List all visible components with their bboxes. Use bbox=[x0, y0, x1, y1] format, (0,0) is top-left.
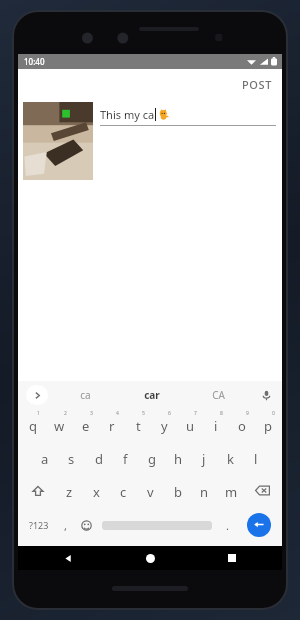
button[interactable]: This my ca bbox=[100, 107, 276, 126]
button[interactable]: z bbox=[56, 474, 83, 507]
staticText: q bbox=[29, 417, 37, 435]
staticText: t bbox=[136, 417, 141, 435]
staticText: 0 bbox=[272, 410, 275, 417]
button[interactable]: ?123 bbox=[22, 507, 55, 543]
button[interactable]: h bbox=[165, 441, 191, 474]
button[interactable]: Emoji bbox=[75, 507, 98, 543]
button[interactable]: v bbox=[137, 474, 164, 507]
button[interactable]: More suggestions bbox=[26, 385, 48, 405]
button[interactable]: s bbox=[58, 441, 85, 474]
staticText: j bbox=[202, 450, 206, 468]
staticText: f bbox=[123, 450, 128, 468]
button[interactable]: POST bbox=[232, 72, 282, 97]
staticText: 5 bbox=[142, 410, 145, 417]
button[interactable]: . bbox=[216, 507, 239, 543]
button[interactable]: l bbox=[243, 441, 269, 474]
staticText: r bbox=[109, 417, 115, 435]
staticText: This my ca bbox=[100, 107, 155, 122]
staticText: u bbox=[186, 417, 195, 435]
staticText: ?123 bbox=[29, 519, 49, 531]
button[interactable]: d bbox=[85, 441, 112, 474]
button[interactable]: n bbox=[191, 474, 218, 507]
staticText: 8 bbox=[220, 410, 223, 417]
button[interactable]: car bbox=[118, 381, 185, 408]
button[interactable]: b bbox=[164, 474, 191, 507]
button[interactable]: c bbox=[110, 474, 137, 507]
button[interactable]: Home bbox=[138, 546, 162, 570]
staticText: 10:40 bbox=[24, 56, 45, 67]
staticText: l bbox=[254, 450, 258, 468]
staticText: w bbox=[54, 417, 65, 435]
staticText: a bbox=[41, 450, 49, 468]
staticText: h bbox=[174, 450, 183, 468]
staticText: m bbox=[225, 483, 238, 501]
staticText: s bbox=[68, 450, 75, 468]
staticText: CA bbox=[212, 388, 225, 402]
button[interactable]: 9 bbox=[229, 408, 255, 441]
button[interactable]: 4 bbox=[99, 408, 125, 441]
button[interactable]: 1 bbox=[19, 408, 46, 441]
button[interactable]: Back bbox=[56, 546, 80, 570]
staticText: i bbox=[214, 417, 218, 435]
staticText: n bbox=[200, 483, 209, 501]
button[interactable]: 3 bbox=[73, 408, 99, 441]
staticText: d bbox=[95, 450, 103, 468]
button[interactable]: Enter bbox=[239, 507, 278, 543]
staticText: 7 bbox=[194, 410, 197, 417]
staticText: o bbox=[238, 417, 246, 435]
staticText: g bbox=[148, 450, 156, 468]
staticText: 6 bbox=[168, 410, 171, 417]
staticText: 9 bbox=[246, 410, 249, 417]
button[interactable]: ca bbox=[52, 381, 118, 408]
button[interactable]: j bbox=[191, 441, 217, 474]
staticText: car bbox=[144, 388, 160, 402]
staticText: b bbox=[174, 483, 182, 501]
staticText: x bbox=[93, 483, 100, 501]
staticText: . bbox=[226, 518, 229, 533]
button[interactable]: 2 bbox=[46, 408, 73, 441]
staticText: p bbox=[264, 417, 272, 435]
staticText: 2 bbox=[64, 410, 67, 417]
staticText: ca bbox=[80, 388, 91, 402]
staticText: 3 bbox=[90, 410, 93, 417]
button[interactable]: 0 bbox=[255, 408, 281, 441]
staticText: v bbox=[147, 483, 154, 501]
staticText: y bbox=[161, 417, 168, 435]
button[interactable]: 6 bbox=[151, 408, 177, 441]
staticText: k bbox=[227, 450, 234, 468]
staticText: e bbox=[82, 417, 90, 435]
button[interactable]: 7 bbox=[177, 408, 203, 441]
button[interactable]: k bbox=[217, 441, 243, 474]
button[interactable]: a bbox=[31, 441, 58, 474]
staticText: z bbox=[66, 483, 73, 501]
staticText: 1 bbox=[37, 410, 40, 417]
button[interactable]: Attached photo bbox=[23, 102, 93, 180]
staticText: c bbox=[120, 483, 127, 501]
button[interactable]: Voice input bbox=[257, 386, 275, 404]
button[interactable]: 5 bbox=[125, 408, 151, 441]
button[interactable]: m bbox=[218, 474, 245, 507]
button[interactable]: CA bbox=[185, 381, 252, 408]
button[interactable]: Recent apps bbox=[220, 546, 244, 570]
button[interactable]: x bbox=[83, 474, 110, 507]
staticText: , bbox=[64, 518, 67, 533]
button[interactable]: , bbox=[55, 507, 75, 543]
staticText: 4 bbox=[116, 410, 119, 417]
button[interactable]: Backspace bbox=[245, 474, 280, 507]
button[interactable]: f bbox=[112, 441, 139, 474]
button[interactable]: 8 bbox=[203, 408, 229, 441]
button[interactable]: g bbox=[139, 441, 165, 474]
button[interactable]: Shift bbox=[20, 474, 56, 507]
staticText: POST bbox=[242, 77, 272, 92]
